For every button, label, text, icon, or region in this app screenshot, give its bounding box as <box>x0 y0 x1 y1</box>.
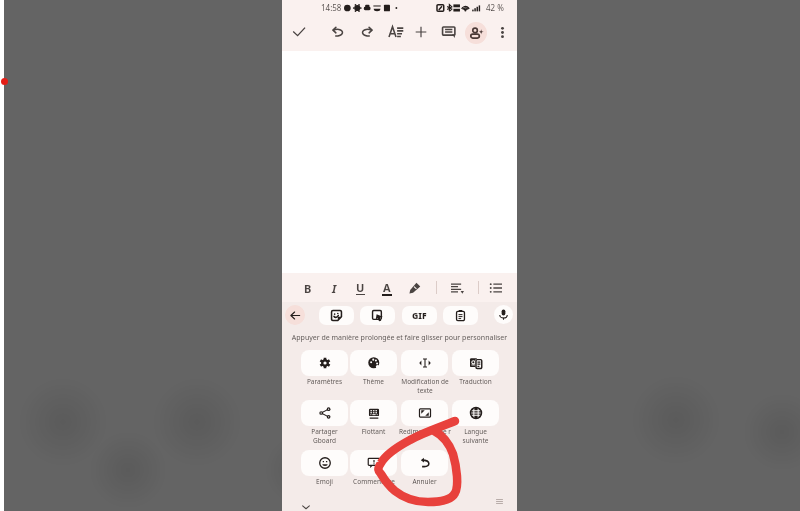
button[interactable]: Highlight <box>405 278 425 298</box>
button[interactable]: Text colour <box>377 278 397 298</box>
staticText: Annuler <box>401 477 448 486</box>
staticText: Emoji <box>301 477 348 486</box>
button[interactable]: Thème <box>350 350 397 376</box>
button[interactable]: Commentaire <box>350 450 397 476</box>
button[interactable]: Collapse keyboard <box>297 498 315 511</box>
staticText: Redimensionne r <box>397 427 453 436</box>
button[interactable]: Text formatting <box>385 21 407 43</box>
button[interactable]: More options <box>491 21 513 43</box>
button[interactable]: Paragraph alignment <box>447 278 467 298</box>
staticText: Appuyer de manière prolongée et faire gl… <box>282 333 517 343</box>
button[interactable]: Stickers <box>319 306 354 325</box>
button[interactable]: Clipboard <box>443 306 478 325</box>
staticText: Partager Gboard <box>301 427 348 445</box>
staticText: Flottant <box>350 427 397 436</box>
button[interactable]: Italic <box>324 278 344 298</box>
button[interactable]: Comment <box>438 21 460 43</box>
button[interactable]: Done <box>288 21 310 43</box>
staticText: Langue suivante <box>452 427 499 445</box>
staticText: I <box>332 281 337 296</box>
button[interactable]: Undo <box>327 21 349 43</box>
staticText: Paramètres <box>301 377 348 386</box>
button[interactable]: Paramètres <box>301 350 348 376</box>
staticText: Modification de texte <box>397 377 453 395</box>
button[interactable]: Annuler <box>401 450 448 476</box>
button[interactable]: Bulleted list <box>486 278 506 298</box>
button[interactable]: Voice input <box>494 305 513 324</box>
staticText: B <box>304 281 312 296</box>
button[interactable]: Flottant <box>350 400 397 426</box>
staticText: Traduction <box>452 377 499 386</box>
staticText: GIF <box>412 310 427 322</box>
button[interactable]: Partager Gboard <box>301 400 348 426</box>
button[interactable]: Bold <box>298 278 318 298</box>
button[interactable]: Handwriting <box>360 306 395 325</box>
button[interactable]: Emoji <box>301 450 348 476</box>
button[interactable]: GIF <box>402 306 437 325</box>
staticText: 14:58 <box>321 2 342 13</box>
staticText: A <box>383 280 391 295</box>
button[interactable]: Traduction <box>452 350 499 376</box>
button[interactable]: Underline <box>350 278 370 298</box>
staticText: U <box>356 280 365 295</box>
staticText: 42 % <box>486 2 504 13</box>
button[interactable]: Insert <box>410 21 432 43</box>
button[interactable]: Redimensionne r <box>401 400 448 426</box>
button[interactable]: Share document <box>465 22 487 44</box>
staticText: Commentaire <box>348 477 400 486</box>
button[interactable]: Redo <box>356 21 378 43</box>
button[interactable]: Langue suivante <box>452 400 499 426</box>
button[interactable]: Modification de texte <box>401 350 448 376</box>
staticText: Thème <box>350 377 397 386</box>
button[interactable]: Back <box>285 305 305 325</box>
